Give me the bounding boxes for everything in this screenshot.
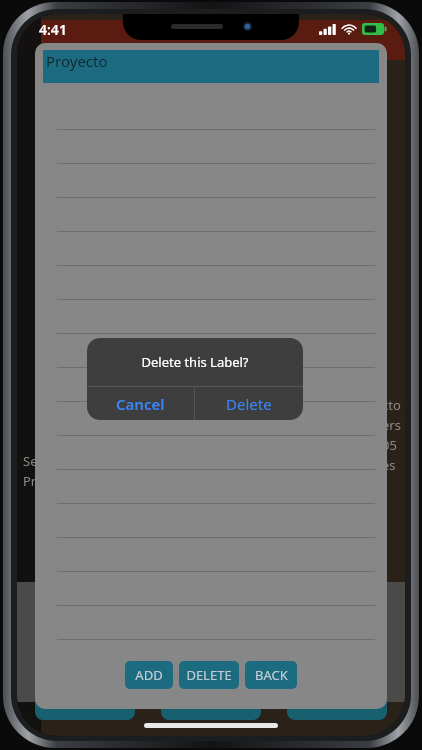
- button[interactable]: BACK: [245, 661, 297, 689]
- button[interactable]: [35, 504, 387, 538]
- button[interactable]: [35, 232, 387, 266]
- button[interactable]: [35, 368, 387, 402]
- button[interactable]: [35, 198, 387, 232]
- staticText: 4:41: [39, 20, 67, 39]
- staticText: 05: [382, 436, 397, 454]
- button[interactable]: [35, 538, 387, 572]
- staticText: DELETE: [186, 666, 232, 684]
- button[interactable]: [35, 470, 387, 504]
- button[interactable]: [35, 436, 387, 470]
- staticText: Delete: [226, 394, 272, 414]
- staticText: Pro: [23, 472, 44, 490]
- staticText: ADD: [135, 666, 163, 684]
- staticText: ers: [382, 416, 401, 434]
- button[interactable]: [35, 402, 387, 436]
- staticText: Proyecto: [46, 51, 108, 71]
- button[interactable]: Delete: [195, 387, 303, 420]
- staticText: Delete this Label?: [141, 353, 249, 371]
- button[interactable]: [35, 164, 387, 198]
- button[interactable]: [35, 300, 387, 334]
- staticText: BACK: [255, 666, 288, 684]
- button[interactable]: Cancel: [87, 387, 194, 420]
- button[interactable]: [35, 334, 387, 368]
- button[interactable]: [35, 266, 387, 300]
- button[interactable]: [35, 606, 387, 640]
- button[interactable]: [35, 130, 387, 164]
- button[interactable]: [35, 572, 387, 606]
- button[interactable]: [35, 96, 387, 130]
- button[interactable]: ADD: [125, 661, 173, 689]
- staticText: es: [382, 456, 396, 474]
- staticText: Cancel: [116, 394, 165, 414]
- staticText: cto: [382, 396, 401, 414]
- button[interactable]: DELETE: [179, 661, 239, 689]
- staticText: Sel: [23, 452, 41, 470]
- button[interactable]: Proyecto: [43, 50, 379, 83]
